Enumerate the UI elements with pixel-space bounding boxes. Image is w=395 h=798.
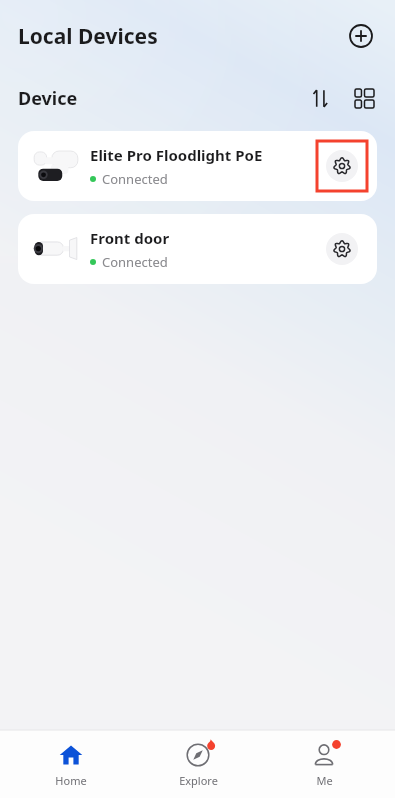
button[interactable]: Device settings <box>326 150 358 182</box>
staticText: Explore <box>179 773 218 788</box>
staticText: Device <box>18 86 78 111</box>
button[interactable]: Elite Pro Floodlight PoE <box>18 131 377 201</box>
button[interactable]: Sort devices <box>303 81 337 115</box>
staticText: Connected <box>102 253 168 271</box>
button[interactable]: Front door <box>18 214 377 284</box>
button[interactable]: Add device <box>341 16 381 56</box>
button[interactable]: Change layout <box>347 81 381 115</box>
staticText: Front door <box>90 228 170 248</box>
staticText: Local Devices <box>18 22 158 51</box>
staticText: Elite Pro Floodlight PoE <box>90 145 263 165</box>
button[interactable]: Home <box>16 730 126 798</box>
staticText: Connected <box>102 170 168 188</box>
button[interactable]: Device settings <box>326 233 358 265</box>
staticText: Home <box>55 773 87 788</box>
staticText: Me <box>316 773 333 788</box>
button[interactable]: Me <box>269 730 379 798</box>
button[interactable]: Explore <box>143 730 253 798</box>
